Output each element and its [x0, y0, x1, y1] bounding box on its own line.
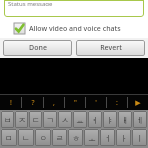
button[interactable]: ㅁ: [1, 129, 17, 146]
staticText: ㅕ: [91, 115, 99, 125]
staticText: ㅐ: [121, 115, 129, 125]
staticText: ㅇ: [39, 133, 47, 143]
staticText: ,: [53, 98, 55, 108]
button[interactable]: ㄹ: [52, 129, 67, 146]
button[interactable]: ?: [22, 95, 43, 110]
button[interactable]: Revert: [76, 40, 145, 56]
button[interactable]: ㅕ: [88, 111, 102, 128]
staticText: Allow video and voice chats: [29, 24, 121, 34]
button[interactable]: Status message: [4, 0, 144, 17]
button[interactable]: ㅑ: [103, 111, 117, 128]
button[interactable]: ㄷ: [29, 111, 42, 128]
staticText: ㅏ: [120, 133, 128, 143]
button[interactable]: Done: [3, 40, 72, 56]
button[interactable]: ": [65, 95, 85, 110]
button[interactable]: ㅅ: [58, 111, 72, 128]
button[interactable]: ㅎ: [68, 129, 83, 146]
button[interactable]: ㅂ: [1, 111, 14, 128]
staticText: ㄹ: [56, 133, 64, 143]
staticText: ': [95, 98, 97, 108]
staticText: Done: [29, 43, 47, 53]
staticText: ▶: [135, 99, 141, 107]
staticText: ㅣ: [136, 133, 144, 143]
button[interactable]: ': [86, 95, 106, 110]
staticText: !: [10, 98, 12, 108]
button[interactable]: ㅛ: [73, 111, 87, 128]
button[interactable]: ▶: [128, 95, 148, 110]
staticText: ㄴ: [22, 133, 30, 143]
staticText: ?: [31, 98, 35, 108]
staticText: ㅓ: [104, 133, 112, 143]
button[interactable]: :: [107, 95, 127, 110]
button[interactable]: ㄱ: [43, 111, 57, 128]
button[interactable]: !: [0, 95, 21, 110]
staticText: ㄱ: [46, 115, 54, 125]
staticText: ㅑ: [106, 115, 114, 125]
staticText: ㅔ: [136, 115, 144, 125]
button[interactable]: ㅓ: [100, 129, 115, 146]
button[interactable]: ㅈ: [15, 111, 28, 128]
button[interactable]: ㅗ: [84, 129, 99, 146]
button[interactable]: ㄴ: [18, 129, 34, 146]
staticText: ㅂ: [4, 115, 12, 125]
button[interactable]: ㅣ: [132, 129, 147, 146]
button[interactable]: ,: [44, 95, 64, 110]
staticText: ㅎ: [72, 133, 80, 143]
staticText: ㅛ: [76, 115, 84, 125]
button[interactable]: ㅔ: [133, 111, 147, 128]
staticText: ㅅ: [61, 115, 69, 125]
staticText: Status message: [8, 0, 53, 6]
staticText: ㅁ: [5, 133, 13, 143]
staticText: ㄷ: [32, 115, 40, 125]
button[interactable]: ㅏ: [116, 129, 131, 146]
button[interactable]: ㅇ: [35, 129, 51, 146]
button[interactable]: ㅐ: [118, 111, 132, 128]
staticText: ㅗ: [88, 133, 96, 143]
staticText: ": [74, 98, 77, 108]
staticText: ㅈ: [18, 115, 26, 125]
staticText: Revert: [100, 43, 122, 53]
staticText: :: [116, 98, 118, 108]
button[interactable]: Allow video and voice chats: [14, 21, 148, 36]
